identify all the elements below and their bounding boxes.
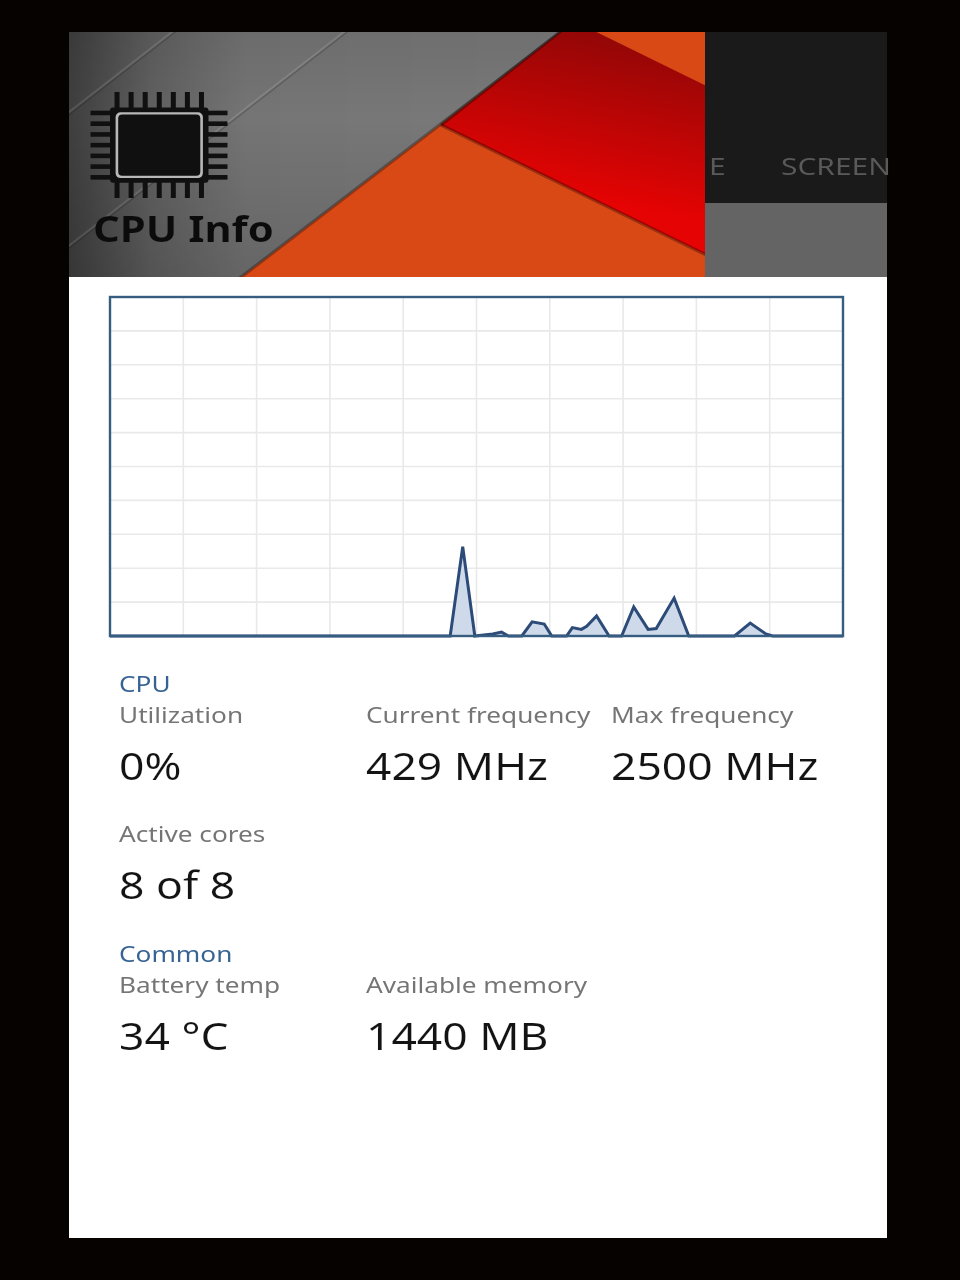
staticText: 1440 MB <box>366 1009 548 1061</box>
staticText: Battery temp <box>119 969 281 999</box>
staticText: 0% <box>119 739 182 791</box>
staticText: CPU Info <box>93 204 274 253</box>
staticText: Available memory <box>366 969 587 999</box>
staticText: CPU <box>119 668 171 698</box>
staticText: Current frequency <box>366 699 591 729</box>
staticText: 2500 MHz <box>611 739 819 791</box>
staticText: SCREEN <box>781 150 891 181</box>
staticText: 8 of 8 <box>119 858 236 910</box>
staticText: 34 °C <box>119 1009 229 1061</box>
staticText: E <box>709 150 726 181</box>
staticText: Common <box>119 938 233 968</box>
staticText: Max frequency <box>611 699 794 729</box>
staticText: 429 MHz <box>366 739 548 791</box>
staticText: Utilization <box>119 699 244 729</box>
staticText: Active cores <box>119 818 267 848</box>
button[interactable]: CPU Info app banner <box>69 32 887 277</box>
